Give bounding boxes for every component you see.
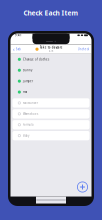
staticText: ‹	[13, 46, 15, 53]
button[interactable]: Formula	[10, 119, 91, 130]
staticText: Bunny	[23, 68, 32, 72]
button[interactable]: Moisturizer	[10, 97, 91, 108]
staticText: Uncheck	[78, 47, 89, 51]
staticText: Change of clothes	[23, 58, 49, 61]
button[interactable]: Hat	[10, 87, 91, 97]
button[interactable]: ‹	[10, 45, 22, 54]
staticText: Formula	[23, 123, 33, 126]
staticText: Warm shoes	[23, 112, 38, 116]
staticText: 4/8	[49, 49, 54, 53]
staticText: Hat	[23, 90, 27, 94]
staticText: Moisturizer	[23, 101, 38, 105]
staticText: Back	[15, 47, 20, 51]
staticText: Jumper	[23, 79, 33, 83]
staticText: Baby	[23, 134, 29, 137]
button[interactable]: Add item	[77, 181, 88, 192]
button[interactable]: Change of clothes	[10, 54, 91, 65]
button[interactable]: Warm shoes	[10, 108, 91, 119]
staticText: Take to daycare	[40, 46, 63, 49]
staticText: 9:41	[15, 33, 22, 37]
button[interactable]: Bunny	[10, 65, 91, 76]
button[interactable]: Uncheck	[76, 45, 91, 54]
button[interactable]: Jumper	[10, 76, 91, 87]
button[interactable]: Baby	[10, 130, 91, 141]
staticText: Check Each Item	[23, 9, 78, 17]
